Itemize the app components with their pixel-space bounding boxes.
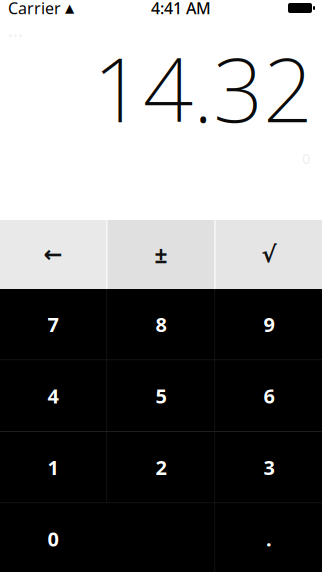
staticText: . <box>266 525 272 552</box>
button[interactable]: 4 <box>0 360 106 431</box>
staticText: 0 <box>47 525 58 552</box>
button[interactable]: 8 <box>107 289 214 359</box>
staticText: 1 <box>47 454 58 481</box>
button[interactable]: 3 <box>215 432 322 502</box>
staticText: 0 <box>302 148 310 168</box>
button[interactable]: 9 <box>215 289 322 359</box>
button[interactable]: 1 <box>0 432 106 502</box>
button[interactable]: 7 <box>0 289 106 359</box>
button[interactable]: 0 <box>0 503 214 572</box>
staticText: ± <box>154 239 167 269</box>
staticText: 8 <box>155 311 166 338</box>
staticText: ▲ <box>65 1 74 15</box>
staticText: 14.32 <box>93 30 313 147</box>
button[interactable]: 2 <box>107 432 214 502</box>
staticText: √ <box>261 242 276 267</box>
staticText: 9 <box>263 311 274 338</box>
button[interactable]: Toggle sign <box>107 220 214 289</box>
staticText: 5 <box>155 382 166 409</box>
staticText: 4 <box>47 382 58 409</box>
button[interactable]: 6 <box>215 360 322 431</box>
button[interactable]: 5 <box>107 360 214 431</box>
staticText: 7 <box>47 311 58 338</box>
staticText: 3 <box>263 454 274 481</box>
staticText: 4:41 AM <box>151 0 211 19</box>
staticText: 2 <box>155 454 166 481</box>
staticText: ← <box>43 242 62 267</box>
button[interactable]: Backspace <box>0 220 106 289</box>
button[interactable]: . <box>215 503 322 572</box>
staticText: Carrier <box>8 0 61 19</box>
staticText: 6 <box>263 382 274 409</box>
button[interactable]: Square root <box>215 220 322 289</box>
